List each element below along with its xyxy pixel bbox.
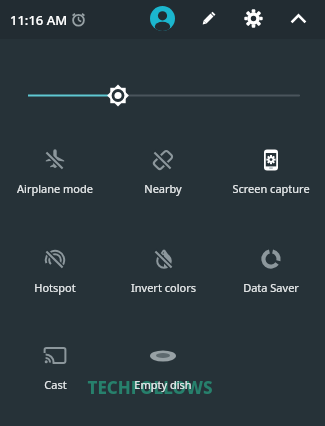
staticText: TECHFOLLOWS: [87, 376, 213, 399]
button[interactable]: Screen capture: [232, 148, 310, 196]
button[interactable]: Data Saver: [243, 247, 299, 295]
button[interactable]: [287, 7, 310, 30]
button[interactable]: [242, 7, 265, 30]
button[interactable]: Invert colors: [131, 247, 196, 295]
staticText: 11:16 AM: [10, 11, 68, 29]
staticText: Empty dish: [134, 377, 192, 392]
button[interactable]: Hotspot: [34, 247, 76, 295]
staticText: Nearby: [144, 181, 182, 196]
button[interactable]: Airplane mode: [17, 148, 93, 196]
staticText: Cast: [44, 377, 67, 392]
staticText: Invert colors: [131, 280, 196, 295]
staticText: Hotspot: [34, 280, 76, 295]
button[interactable]: Empty dish: [134, 344, 192, 392]
staticText: Screen capture: [232, 181, 310, 196]
staticText: Data Saver: [243, 280, 299, 295]
button[interactable]: [150, 6, 175, 31]
button[interactable]: Cast: [43, 344, 67, 392]
staticText: Airplane mode: [17, 181, 93, 196]
button[interactable]: [197, 7, 220, 30]
button[interactable]: Nearby: [144, 148, 182, 196]
